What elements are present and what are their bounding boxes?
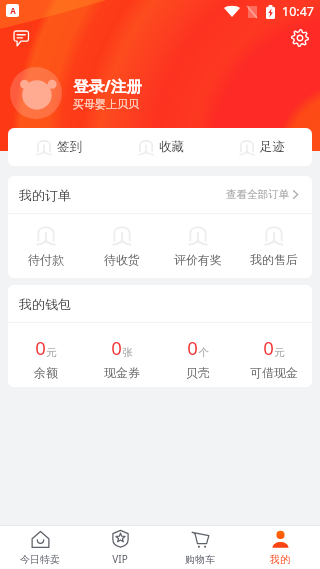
button[interactable]: 我的: [240, 526, 320, 569]
button[interactable]: 签到: [8, 128, 110, 166]
button[interactable]: 0: [236, 327, 312, 387]
staticText: 买母婴上贝贝: [73, 97, 139, 111]
staticText: 可借现金: [250, 365, 298, 380]
button[interactable]: 0: [8, 327, 84, 387]
staticText: 我的钱包: [19, 296, 71, 312]
button[interactable]: 查看全部订单: [226, 188, 298, 201]
staticText: 我的订单: [19, 187, 71, 203]
button[interactable]: 评价有奖: [160, 214, 236, 278]
staticText: 元: [46, 346, 57, 359]
button[interactable]: VIP: [80, 526, 160, 569]
staticText: A: [10, 5, 16, 16]
staticText: 0: [35, 335, 46, 360]
staticText: 张: [122, 346, 133, 359]
staticText: 足迹: [260, 139, 285, 155]
staticText: 评价有奖: [174, 252, 222, 267]
button[interactable]: 购物车: [160, 526, 240, 569]
staticText: 余额: [34, 365, 58, 380]
staticText: 待收货: [104, 252, 140, 267]
staticText: 购物车: [185, 553, 215, 566]
staticText: 收藏: [159, 139, 184, 155]
button[interactable]: Messages: [6, 24, 34, 52]
staticText: 我的: [270, 553, 290, 566]
staticText: 登录/注册: [73, 75, 142, 96]
staticText: 10:47: [282, 3, 314, 20]
button[interactable]: 登录/注册: [10, 66, 320, 120]
staticText: 0: [111, 335, 122, 360]
staticText: VIP: [112, 552, 128, 566]
button[interactable]: 今日特卖: [0, 526, 80, 569]
staticText: 查看全部订单: [226, 188, 289, 201]
staticText: 元: [274, 346, 285, 359]
staticText: 今日特卖: [20, 553, 60, 566]
button[interactable]: 足迹: [211, 128, 312, 166]
button[interactable]: 0: [160, 327, 236, 387]
staticText: 待付款: [28, 252, 64, 267]
staticText: 我的售后: [250, 252, 298, 267]
staticText: 贝壳: [186, 365, 210, 380]
button[interactable]: 待收货: [84, 214, 160, 278]
button[interactable]: 0: [84, 327, 160, 387]
button[interactable]: 待付款: [8, 214, 84, 278]
staticText: 个: [198, 346, 209, 359]
staticText: 0: [263, 335, 274, 360]
button[interactable]: 收藏: [110, 128, 211, 166]
button[interactable]: Settings: [286, 24, 314, 52]
button[interactable]: 我的售后: [236, 214, 312, 278]
staticText: 签到: [57, 139, 82, 155]
staticText: 现金券: [104, 365, 140, 380]
staticText: 0: [187, 335, 198, 360]
